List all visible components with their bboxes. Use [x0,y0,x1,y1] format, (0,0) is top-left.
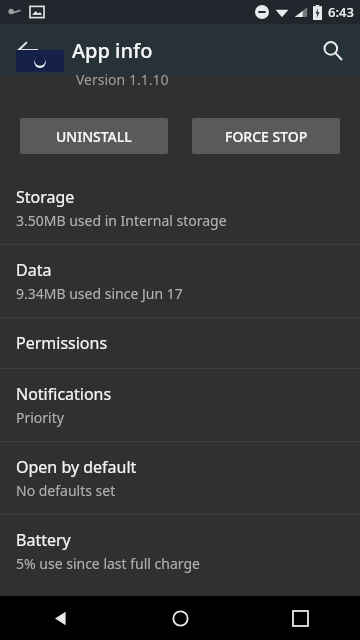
button[interactable]: Home [120,596,240,640]
staticText: Data [16,259,52,281]
staticText: Storage [16,186,75,208]
staticText: App info [72,37,153,64]
staticText: Priority [16,408,64,427]
button[interactable]: Recent apps [240,596,360,640]
button[interactable]: UNINSTALL [20,118,168,154]
button[interactable]: Open by default [0,442,360,514]
button[interactable]: Notifications [0,369,360,441]
button[interactable]: FORCE STOP [192,118,340,154]
staticText: No defaults set [16,481,116,500]
button[interactable]: Battery [0,515,360,587]
button[interactable]: Back [0,596,120,640]
staticText: UNINSTALL [56,127,132,146]
button[interactable]: Storage [0,172,360,244]
staticText: Version 1.1.10 [76,70,169,89]
button[interactable]: Data [0,245,360,317]
staticText: Battery [16,529,71,551]
staticText: Permissions [16,332,108,354]
button[interactable]: Permissions [0,318,360,368]
button[interactable]: Search [312,30,352,70]
staticText: FORCE STOP [225,127,308,146]
staticText: 3.50MB used in Internal storage [16,211,227,230]
staticText: Open by default [16,456,137,478]
staticText: 6:43 [328,3,354,21]
staticText: 5% use since last full charge [16,554,200,573]
staticText: 9.34MB used since Jun 17 [16,284,183,303]
staticText: Notifications [16,383,112,405]
button[interactable]: Back [8,30,48,70]
